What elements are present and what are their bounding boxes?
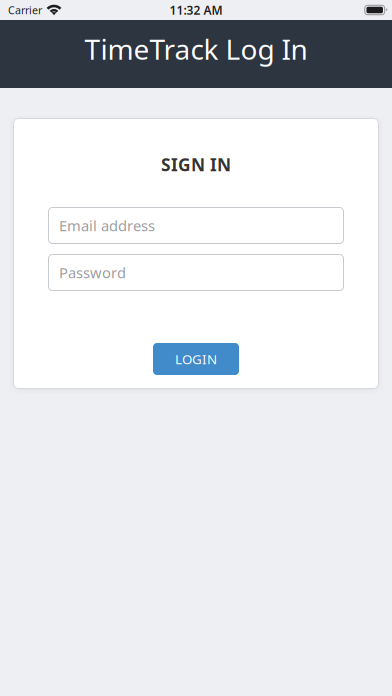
button[interactable]: LOGIN — [153, 343, 239, 375]
staticText: SIGN IN — [161, 153, 231, 176]
staticText: TimeTrack Log In — [84, 30, 307, 68]
staticText: LOGIN — [175, 350, 217, 368]
button[interactable]: Email address — [48, 207, 344, 244]
staticText: Carrier — [8, 3, 42, 17]
staticText: Email address — [59, 216, 155, 235]
staticText: Password — [59, 263, 126, 282]
button[interactable]: Password — [48, 254, 344, 291]
staticText: 11:32 AM — [169, 2, 222, 18]
